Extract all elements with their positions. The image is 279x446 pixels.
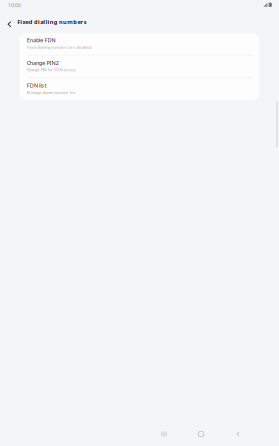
button[interactable]: Back — [2, 13, 17, 30]
staticText: Fixed dialling numbers — [17, 18, 87, 26]
button[interactable]: Change PIN2 — [20, 55, 259, 78]
button[interactable]: FDN list — [20, 78, 259, 100]
button[interactable]: Enable FDN — [20, 33, 259, 55]
staticText: Change PIN for FDN access — [27, 67, 76, 72]
staticText: Fixed dialling numbers are disabled. — [27, 44, 92, 50]
staticText: 10:00 — [8, 2, 21, 8]
staticText: Change PIN2 — [27, 59, 59, 66]
staticText: FDN list — [27, 82, 46, 89]
staticText: Enable FDN — [27, 36, 56, 44]
button[interactable]: Recent apps — [152, 424, 176, 444]
staticText: Manage phone number list — [27, 90, 75, 95]
button[interactable]: Back — [226, 424, 250, 444]
button[interactable]: Home — [189, 424, 213, 444]
